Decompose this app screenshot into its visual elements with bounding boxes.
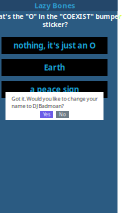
staticText: a peace sign (30, 84, 79, 95)
staticText: nothing, it's just an O (13, 40, 95, 51)
button[interactable]: a peace sign (1, 81, 107, 98)
staticText: Earth (44, 62, 65, 73)
staticText: What's the "O" in the "COEXIST" bumper (0, 12, 121, 21)
staticText: No (59, 111, 66, 118)
button[interactable]: Yes (40, 111, 53, 118)
staticText: Lazy Bones (34, 0, 75, 10)
staticText: Got it. Would you like to change your na… (11, 95, 97, 109)
button[interactable]: nothing, it's just an O (1, 37, 107, 54)
staticText: Yes (43, 111, 50, 118)
button[interactable]: No (56, 111, 69, 118)
button[interactable]: Earth (1, 59, 107, 76)
staticText: sticker? (42, 20, 67, 29)
